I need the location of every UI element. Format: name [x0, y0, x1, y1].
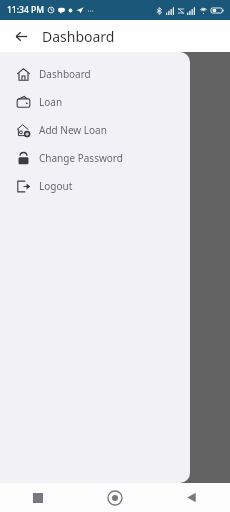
- staticText: 11:34 PM: [7, 4, 44, 16]
- staticText: Change Password: [39, 151, 123, 165]
- button[interactable]: [14, 88, 216, 178]
- staticText: Add New Loan: [39, 123, 107, 137]
- button[interactable]: Logout: [0, 172, 190, 200]
- button[interactable]: Recent apps: [0, 483, 76, 512]
- button[interactable]: Loan: [0, 88, 190, 116]
- staticText: Logout: [39, 179, 73, 193]
- button[interactable]: Add New Loan: [0, 116, 190, 144]
- button[interactable]: Back: [8, 23, 34, 49]
- button[interactable]: Change Password: [0, 144, 190, 172]
- staticText: Loan: [39, 95, 63, 109]
- button[interactable]: Back: [153, 483, 230, 512]
- button[interactable]: Dashboard: [0, 60, 190, 88]
- staticText: Dashboard: [39, 67, 91, 81]
- button[interactable]: Home: [76, 483, 153, 512]
- button[interactable]: Loan: [14, 186, 216, 272]
- staticText: Dashboard: [42, 27, 115, 46]
